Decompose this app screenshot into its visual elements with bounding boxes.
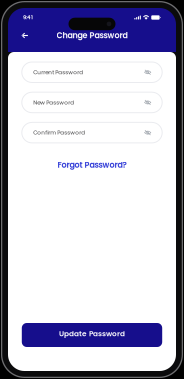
staticText: 9:41 <box>23 14 33 21</box>
staticText: Confirm Password <box>33 129 85 136</box>
button[interactable]: New Password <box>22 92 162 113</box>
staticText: Forgot Password? <box>57 159 126 171</box>
staticText: New Password <box>33 98 74 106</box>
button[interactable]: Current Password <box>22 62 162 82</box>
button[interactable]: Forgot Password? <box>53 155 130 175</box>
staticText: Update Password <box>59 329 125 339</box>
button[interactable]: Confirm Password <box>22 122 162 143</box>
staticText: Current Password <box>33 68 83 76</box>
button[interactable]: Update Password <box>22 323 162 347</box>
button[interactable]: Back <box>16 27 33 43</box>
staticText: Change Password <box>56 30 127 41</box>
